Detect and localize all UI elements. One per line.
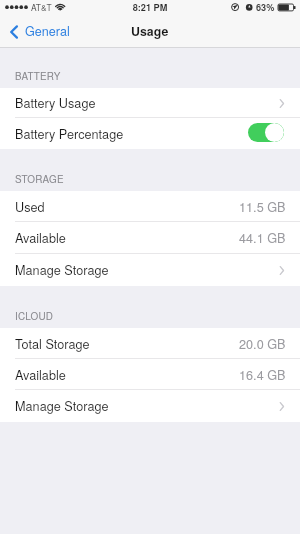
button[interactable]: Battery Percentage toggle, on: [248, 123, 284, 142]
staticText: 11.5 GB: [239, 197, 286, 215]
button[interactable]: Battery Percentage: [0, 118, 300, 149]
other: Manage Storage: [279, 401, 285, 412]
button[interactable]: Manage Storage: [0, 254, 300, 286]
button[interactable]: Available: [0, 359, 300, 390]
staticText: 16.4 GB: [239, 365, 286, 383]
staticText: Total Storage: [15, 334, 90, 352]
staticText: Used: [15, 197, 45, 215]
staticText: Battery Percentage: [15, 124, 124, 142]
staticText: STORAGE: [15, 172, 64, 186]
staticText: Available: [15, 228, 66, 246]
button[interactable]: Total Storage: [0, 328, 300, 359]
button[interactable]: Used: [0, 191, 300, 222]
staticText: 63%: [256, 1, 275, 14]
button[interactable]: Available: [0, 222, 300, 254]
staticText: General: [25, 22, 70, 40]
staticText: Manage Storage: [15, 396, 109, 414]
staticText: Usage: [131, 22, 169, 40]
button[interactable]: Manage Storage: [0, 390, 300, 422]
staticText: BATTERY: [15, 69, 61, 83]
staticText: ICLOUD: [15, 309, 54, 323]
button[interactable]: Battery Usage: [0, 88, 300, 118]
other: Battery Usage: [279, 98, 285, 109]
staticText: 20.0 GB: [239, 334, 286, 352]
other: Manage Storage: [279, 265, 285, 276]
staticText: 8:21 PM: [0, 1, 300, 14]
staticText: 44.1 GB: [239, 228, 286, 246]
button[interactable]: General: [0, 21, 80, 43]
staticText: Manage Storage: [15, 260, 109, 278]
staticText: Battery Usage: [15, 93, 96, 111]
staticText: AT&T: [31, 1, 52, 13]
staticText: Available: [15, 365, 66, 383]
